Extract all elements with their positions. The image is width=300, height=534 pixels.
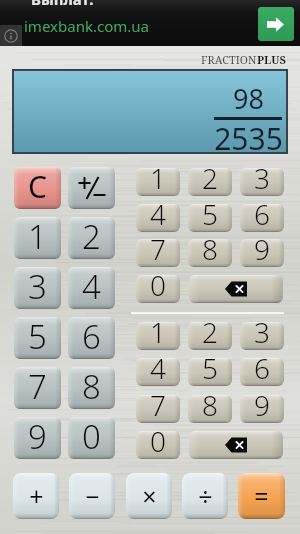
staticText: + bbox=[29, 479, 44, 513]
staticText: 8 bbox=[82, 364, 101, 409]
staticText: 4 bbox=[150, 195, 166, 233]
staticText: 7 bbox=[150, 230, 166, 268]
button[interactable]: 4 bbox=[68, 267, 115, 309]
button[interactable]: Backspace bbox=[189, 431, 283, 459]
button[interactable]: Go bbox=[258, 7, 294, 41]
button[interactable]: 7 bbox=[136, 395, 180, 423]
button[interactable]: 8 bbox=[188, 239, 232, 267]
staticText: 2535 bbox=[214, 118, 282, 159]
staticText: 6 bbox=[254, 195, 270, 233]
button[interactable]: + bbox=[13, 473, 59, 519]
staticText: 6 bbox=[82, 314, 101, 359]
staticText: 9 bbox=[254, 230, 270, 268]
staticText: 5 bbox=[28, 314, 47, 359]
button[interactable]: 9 bbox=[240, 395, 284, 423]
staticText: 3 bbox=[254, 159, 270, 197]
staticText: 0 bbox=[150, 422, 166, 460]
staticText: 98 bbox=[233, 80, 264, 117]
button[interactable]: 0 bbox=[136, 431, 180, 459]
staticText: − bbox=[85, 479, 100, 513]
staticText: 0 bbox=[82, 414, 101, 459]
button[interactable]: = bbox=[238, 473, 285, 519]
button[interactable]: 3 bbox=[240, 322, 284, 350]
staticText: 7 bbox=[28, 364, 47, 409]
staticText: 3 bbox=[254, 313, 270, 351]
button[interactable]: Backspace bbox=[189, 275, 283, 303]
button[interactable]: 0 bbox=[136, 275, 180, 303]
button[interactable]: 3 bbox=[14, 267, 61, 309]
staticText: ÷ bbox=[198, 479, 213, 513]
staticText: PLUS bbox=[257, 52, 286, 67]
staticText: 2 bbox=[202, 159, 218, 197]
staticText: 4 bbox=[150, 349, 166, 387]
button[interactable]: 6 bbox=[240, 358, 284, 386]
button[interactable]: ÷ bbox=[182, 473, 228, 519]
staticText: 6 bbox=[254, 349, 270, 387]
staticText: 1 bbox=[28, 214, 47, 259]
button[interactable]: 0 bbox=[68, 417, 115, 459]
button[interactable]: 6 bbox=[240, 204, 284, 232]
button[interactable]: 8 bbox=[68, 367, 115, 409]
staticText: 1 bbox=[150, 159, 166, 197]
button[interactable]: Page info bbox=[0, 25, 22, 46]
button[interactable]: 4 bbox=[136, 358, 180, 386]
staticText: 5 bbox=[202, 195, 218, 233]
staticText: 3 bbox=[28, 264, 47, 309]
staticText: 9 bbox=[254, 386, 270, 424]
button[interactable]: 5 bbox=[188, 204, 232, 232]
staticText: 9 bbox=[28, 414, 47, 459]
button[interactable]: 1 bbox=[136, 168, 180, 196]
staticText: 8 bbox=[202, 386, 218, 424]
button[interactable]: 4 bbox=[136, 204, 180, 232]
button[interactable]: 1 bbox=[14, 217, 61, 259]
button[interactable]: 5 bbox=[188, 358, 232, 386]
button[interactable]: 7 bbox=[136, 239, 180, 267]
button[interactable]: 1 bbox=[136, 322, 180, 350]
button[interactable]: 3 bbox=[240, 168, 284, 196]
button[interactable]: Plus minus bbox=[68, 167, 115, 209]
staticText: 4 bbox=[82, 264, 101, 309]
button[interactable]: 2 bbox=[188, 322, 232, 350]
staticText: = bbox=[254, 479, 269, 513]
staticText: 2 bbox=[82, 214, 101, 259]
staticText: 5 bbox=[202, 349, 218, 387]
staticText: 7 bbox=[150, 386, 166, 424]
button[interactable]: 9 bbox=[14, 417, 61, 459]
button[interactable]: − bbox=[69, 473, 115, 519]
button[interactable]: 7 bbox=[14, 367, 61, 409]
staticText: × bbox=[142, 479, 157, 513]
button[interactable]: 2 bbox=[188, 168, 232, 196]
staticText: 1 bbox=[150, 313, 166, 351]
button[interactable]: C bbox=[14, 167, 61, 209]
button[interactable]: 6 bbox=[68, 317, 115, 359]
staticText: 2 bbox=[202, 313, 218, 351]
staticText: imexbank.com.ua bbox=[24, 16, 149, 36]
button[interactable]: 8 bbox=[188, 395, 232, 423]
staticText: 0 bbox=[150, 266, 166, 304]
button[interactable]: 5 bbox=[14, 317, 61, 359]
staticText: 8 bbox=[202, 230, 218, 268]
staticText: FRACTION bbox=[201, 52, 257, 67]
button[interactable]: 9 bbox=[240, 239, 284, 267]
button[interactable]: 2 bbox=[68, 217, 115, 259]
staticText: C bbox=[28, 166, 47, 207]
button[interactable]: × bbox=[126, 473, 172, 519]
staticText: Выплат: bbox=[31, 0, 94, 9]
